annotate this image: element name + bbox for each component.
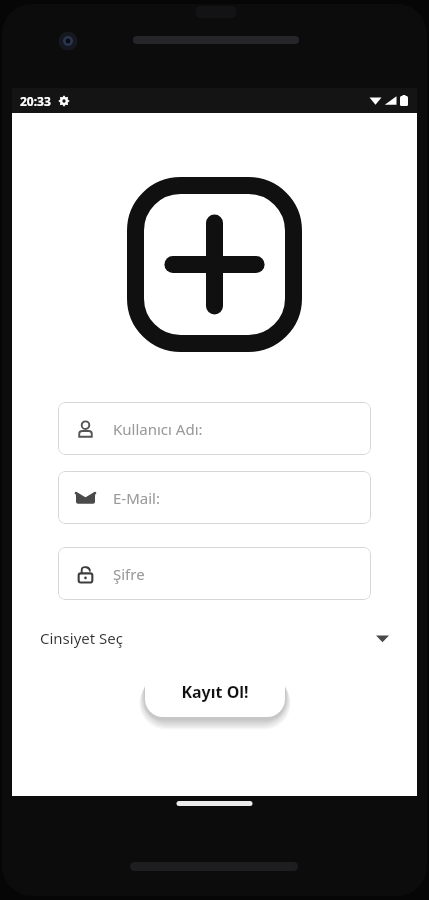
button[interactable]: E-Mail: [58, 471, 371, 524]
staticText: Şifre [113, 564, 145, 584]
staticText: Kullanıcı Adı: [113, 419, 203, 439]
button[interactable]: Şifre [58, 547, 371, 600]
button[interactable]: Kullanıcı Adı: [58, 402, 371, 455]
staticText: 20:33 [20, 93, 51, 109]
button[interactable]: Cinsiyet Seç [40, 623, 389, 653]
staticText: Cinsiyet Seç [40, 628, 123, 648]
button[interactable]: Add photo [126, 176, 303, 353]
button[interactable]: Kayıt Ol! [145, 667, 285, 717]
staticText: Kayıt Ol! [181, 681, 249, 703]
staticText: E-Mail: [113, 488, 160, 508]
